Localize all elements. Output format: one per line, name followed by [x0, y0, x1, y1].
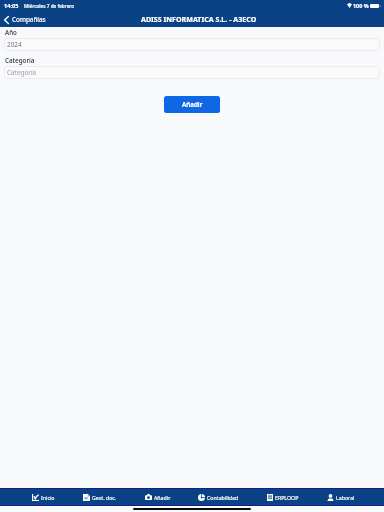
- staticText: Categoría: [7, 68, 37, 77]
- button[interactable]: Categoría: [4, 66, 380, 79]
- button[interactable]: Inicio: [32, 489, 55, 505]
- button[interactable]: Contabilidad: [198, 489, 239, 505]
- staticText: Año: [5, 28, 17, 36]
- staticText: ADISS INFORMATICA S.L. - A3ECO: [141, 14, 257, 24]
- staticText: Compañías: [12, 15, 46, 24]
- button[interactable]: Compañías: [0, 13, 50, 26]
- staticText: Añadir: [182, 100, 203, 109]
- button[interactable]: Laboral: [327, 489, 355, 505]
- staticText: 2024: [7, 40, 22, 49]
- button[interactable]: Añadir: [145, 489, 171, 505]
- staticText: Añadir: [154, 494, 171, 501]
- button[interactable]: Añadir: [164, 96, 220, 113]
- button[interactable]: Gestión documental: [83, 489, 117, 505]
- staticText: 100 %: [353, 2, 369, 9]
- button[interactable]: 2024: [4, 38, 380, 51]
- staticText: Inicio: [41, 494, 55, 501]
- staticText: Gest. doc.: [92, 494, 117, 501]
- staticText: Laboral: [336, 494, 355, 501]
- button[interactable]: ERPLOOP: [267, 489, 299, 505]
- staticText: Categoría: [5, 56, 35, 64]
- staticText: 14:05: [4, 2, 19, 10]
- staticText: ERPLOOP: [275, 494, 299, 501]
- staticText: Contabilidad: [207, 494, 239, 501]
- staticText: Miércoles 7 de febrero: [24, 3, 75, 9]
